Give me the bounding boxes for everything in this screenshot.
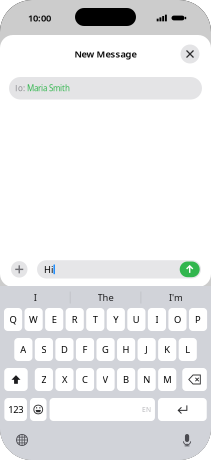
staticText: Hi [44, 263, 53, 276]
button[interactable]: J [138, 338, 156, 361]
button[interactable]: E [45, 308, 63, 331]
staticText: I [155, 313, 158, 326]
staticText: A [20, 343, 26, 356]
staticText: I'm [169, 291, 183, 304]
button[interactable]: 123 [4, 398, 27, 421]
staticText: U [133, 313, 140, 326]
button[interactable]: Send [180, 261, 200, 277]
button[interactable]: B [117, 368, 135, 391]
button[interactable]: A [14, 338, 32, 361]
button[interactable]: T [86, 308, 104, 331]
staticText: D [61, 343, 68, 356]
button[interactable]: Close [177, 41, 203, 67]
button[interactable]: W [24, 308, 43, 331]
button[interactable]: I [0, 287, 70, 308]
button[interactable]: Q [4, 308, 22, 331]
button[interactable]: Switch keyboard [9, 429, 35, 451]
button[interactable]: O [168, 308, 186, 331]
button[interactable]: S [35, 338, 53, 361]
staticText: J [145, 343, 148, 356]
button[interactable]: K [158, 338, 176, 361]
button[interactable]: H [117, 338, 135, 361]
staticText: L [185, 343, 190, 356]
staticText: To: [14, 83, 27, 93]
staticText: Q [10, 313, 17, 326]
staticText: Y [113, 313, 118, 326]
staticText: O [174, 313, 181, 326]
button[interactable]: D [55, 338, 73, 361]
staticText: 123 [8, 403, 23, 416]
staticText: F [82, 343, 87, 356]
button[interactable]: M [158, 368, 176, 391]
button[interactable]: N [138, 368, 156, 391]
staticText: Maria Smith [27, 83, 70, 93]
button[interactable]: P [189, 308, 207, 331]
button[interactable]: Delete [182, 368, 207, 391]
button[interactable]: Y [107, 308, 125, 331]
button[interactable]: U [127, 308, 145, 331]
button[interactable]: C [76, 368, 94, 391]
button[interactable]: G [96, 338, 115, 361]
staticText: P [195, 313, 201, 326]
staticText: K [164, 343, 170, 356]
staticText: W [29, 313, 38, 326]
button[interactable]: Return [158, 398, 207, 421]
staticText: C [82, 373, 88, 386]
button[interactable]: The [70, 287, 141, 308]
staticText: T [93, 313, 98, 326]
staticText: 10:00 [28, 12, 51, 24]
button[interactable]: R [66, 308, 84, 331]
button[interactable]: I [148, 308, 166, 331]
button[interactable]: I'm [141, 287, 211, 308]
button[interactable]: Dictate [174, 429, 200, 451]
button[interactable]: EN [49, 398, 155, 421]
button[interactable]: V [96, 368, 115, 391]
button[interactable]: L [179, 338, 197, 361]
staticText: I [34, 291, 37, 304]
staticText: G [102, 343, 109, 356]
button[interactable]: Z [35, 368, 53, 391]
button[interactable]: X [55, 368, 73, 391]
button[interactable]: Add attachment [11, 261, 27, 278]
staticText: M [163, 373, 171, 386]
staticText: R [72, 313, 78, 326]
staticText: N [143, 373, 150, 386]
staticText: S [41, 343, 46, 356]
staticText: New Message [74, 48, 136, 60]
staticText: E [52, 313, 57, 326]
staticText: X [62, 373, 67, 386]
button[interactable]: Shift [4, 368, 28, 391]
staticText: B [123, 373, 129, 386]
staticText: Z [41, 373, 46, 386]
button[interactable]: Emoji [30, 398, 46, 421]
staticText: The [98, 291, 114, 304]
staticText: H [123, 343, 130, 356]
staticText: EN [142, 405, 151, 414]
staticText: V [102, 373, 108, 386]
button[interactable]: F [76, 338, 94, 361]
